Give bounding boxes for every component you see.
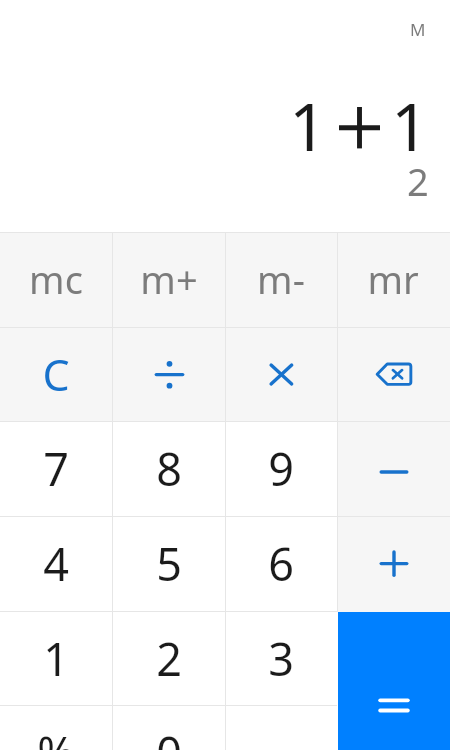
staticText: m- bbox=[257, 253, 305, 305]
staticText: 5 bbox=[156, 533, 182, 594]
button[interactable]: mr bbox=[338, 233, 450, 328]
staticText: 6 bbox=[268, 533, 294, 594]
button[interactable]: m- bbox=[226, 233, 338, 328]
staticText: 9 bbox=[268, 438, 294, 499]
staticText: 2 bbox=[156, 628, 182, 689]
staticText: 1 bbox=[289, 80, 327, 170]
staticText: 7 bbox=[43, 438, 69, 499]
button[interactable]: Equals bbox=[338, 612, 450, 750]
button[interactable]: Backspace bbox=[338, 328, 450, 422]
button[interactable]: 5 bbox=[113, 517, 226, 612]
button[interactable]: mc bbox=[0, 233, 113, 328]
button[interactable]: % bbox=[0, 706, 113, 750]
staticText: M bbox=[410, 18, 426, 41]
staticText: 2 bbox=[407, 155, 429, 207]
button[interactable]: 7 bbox=[0, 422, 113, 517]
button[interactable]: m+ bbox=[113, 233, 226, 328]
button[interactable]: 9 bbox=[226, 422, 338, 517]
staticText: mc bbox=[29, 253, 83, 305]
staticText: 0 bbox=[156, 722, 182, 750]
button[interactable]: 8 bbox=[113, 422, 226, 517]
button[interactable]: C bbox=[0, 328, 113, 422]
staticText: 8 bbox=[156, 438, 182, 499]
staticText: mr bbox=[367, 253, 419, 305]
button[interactable]: Divide bbox=[113, 328, 226, 422]
button[interactable]: 2 bbox=[113, 612, 226, 706]
button[interactable]: 4 bbox=[0, 517, 113, 612]
button[interactable]: 6 bbox=[226, 517, 338, 612]
button[interactable]: Multiply bbox=[226, 328, 338, 422]
staticText: 3 bbox=[268, 628, 294, 689]
button[interactable]: 1 bbox=[0, 612, 113, 706]
staticText: 1 bbox=[43, 628, 69, 689]
button[interactable]: 0 bbox=[113, 706, 226, 750]
staticText: m+ bbox=[140, 253, 198, 305]
staticText: % bbox=[37, 722, 75, 750]
staticText: C bbox=[42, 345, 70, 404]
staticText: 4 bbox=[43, 533, 69, 594]
staticText: 1 bbox=[391, 80, 429, 170]
button[interactable]: 3 bbox=[226, 612, 338, 706]
button[interactable]: Plus bbox=[338, 517, 450, 612]
button[interactable]: Minus bbox=[338, 422, 450, 517]
